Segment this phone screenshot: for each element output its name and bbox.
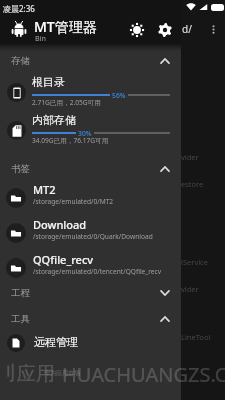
staticText: lService	[181, 257, 208, 267]
button[interactable]: 远程管理	[0, 331, 181, 355]
staticText: LineTool	[181, 332, 211, 342]
staticText: 存储	[11, 55, 30, 67]
other: Collapse 书签	[157, 161, 173, 177]
staticText: 书签	[11, 163, 30, 175]
staticText: 内部存储	[32, 113, 76, 127]
staticText: vider	[181, 152, 199, 162]
staticText: /storage/emulated/0/Quark/Download	[33, 232, 153, 241]
button[interactable]: 书签	[0, 156, 181, 182]
staticText: 30%	[78, 129, 92, 137]
staticText: 工具	[11, 313, 30, 325]
staticText: QQfile_recv	[33, 252, 94, 267]
staticText: 凌晨2:36	[3, 3, 35, 14]
button[interactable]: Download	[0, 215, 181, 248]
staticText: 2.71G已用，2.05G可用	[32, 98, 101, 107]
button[interactable]: Brightness	[126, 19, 148, 41]
staticText: 刂应用	[0, 362, 55, 386]
button[interactable]: MT2	[0, 180, 181, 213]
staticText: Download	[33, 217, 87, 232]
button[interactable]: 内部存储	[0, 112, 181, 150]
button[interactable]: More options	[205, 21, 221, 37]
staticText: MT2	[33, 182, 56, 197]
staticText: 56%	[112, 91, 126, 99]
staticText: Bin	[35, 33, 46, 43]
button[interactable]: 工具	[0, 306, 181, 332]
staticText: MT管理器	[34, 17, 97, 36]
staticText: 华为应用市场	[44, 369, 80, 377]
button[interactable]: 存储	[0, 48, 181, 74]
staticText: 远程管理	[34, 335, 78, 349]
staticText: 工程	[11, 287, 30, 299]
button[interactable]: 工程	[0, 280, 181, 306]
staticText: d/	[182, 22, 192, 36]
other: Expand 工程	[157, 285, 173, 301]
staticText: /storage/emulated/0/tencent/QQfile_recv	[33, 267, 162, 276]
button[interactable]: 根目录	[0, 74, 181, 112]
other: Collapse 存储	[157, 53, 173, 69]
button[interactable]: Settings	[154, 19, 176, 41]
staticText: 根目录	[32, 75, 65, 89]
staticText: 34.09G已用，76.17G可用	[32, 136, 109, 145]
staticText: estore	[181, 179, 204, 189]
button[interactable]: QQfile_recv	[0, 250, 181, 283]
staticText: /storage/emulated/0/MT2	[33, 197, 114, 206]
other: Collapse 工具	[157, 311, 173, 327]
staticText: vider	[181, 284, 199, 294]
staticText: HUACHUANGZS.CO	[62, 361, 225, 388]
